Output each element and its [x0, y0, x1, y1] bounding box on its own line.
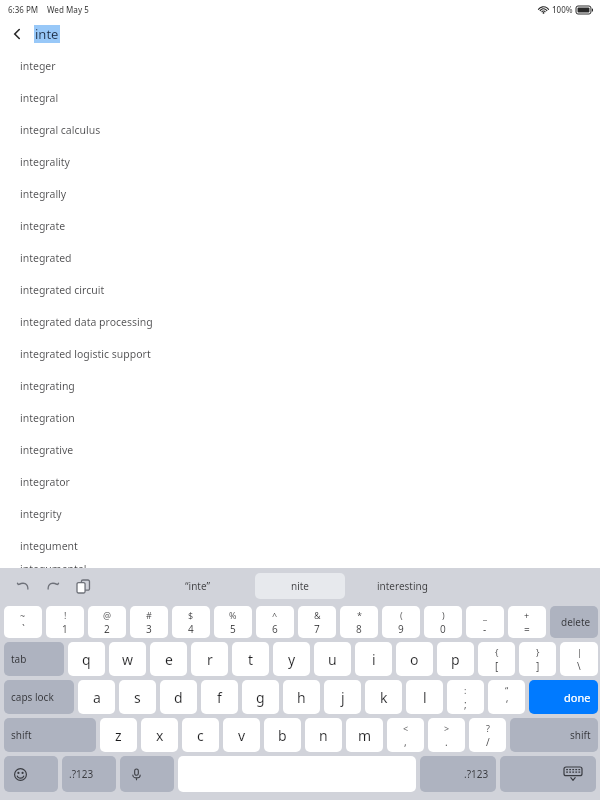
button[interactable]: e	[150, 642, 187, 676]
button[interactable]: (	[382, 606, 420, 638]
button[interactable]: integrate	[0, 210, 600, 242]
staticText: integrative	[20, 443, 74, 457]
button[interactable]: {	[478, 642, 515, 676]
staticText: b	[278, 726, 287, 745]
button[interactable]: integral calculus	[0, 114, 600, 146]
button[interactable]: ~	[4, 606, 42, 638]
button[interactable]: >	[428, 718, 465, 752]
button[interactable]: ?	[469, 718, 506, 752]
button[interactable]: #	[130, 606, 168, 638]
button[interactable]: |	[560, 642, 598, 676]
button[interactable]: v	[223, 718, 260, 752]
button[interactable]: integrated	[0, 242, 600, 274]
button[interactable]: delete	[550, 606, 598, 638]
button[interactable]: Redo	[38, 571, 68, 601]
button[interactable]: nite	[255, 573, 345, 599]
button[interactable]: ^	[256, 606, 294, 638]
button[interactable]: Undo	[8, 571, 38, 601]
button[interactable]: a	[78, 680, 115, 714]
button[interactable]: u	[314, 642, 351, 676]
staticText: 4	[188, 622, 194, 636]
button[interactable]: j	[324, 680, 361, 714]
button[interactable]: integrated data processing	[0, 306, 600, 338]
button[interactable]: Paste	[68, 571, 98, 601]
button[interactable]: t	[232, 642, 269, 676]
staticText: r	[207, 650, 213, 669]
button[interactable]: h	[283, 680, 320, 714]
button[interactable]: +	[508, 606, 546, 638]
button[interactable]: d	[160, 680, 197, 714]
other: Wi-Fi	[538, 5, 549, 14]
button[interactable]: integumental	[0, 562, 600, 568]
staticText: ^	[272, 609, 278, 621]
button[interactable]: }	[519, 642, 556, 676]
button[interactable]: .?123	[62, 756, 116, 792]
button[interactable]: integrality	[0, 146, 600, 178]
button[interactable]: k	[365, 680, 402, 714]
staticText: a	[93, 688, 101, 707]
button[interactable]: Emoji	[4, 756, 58, 792]
button[interactable]: %	[214, 606, 252, 638]
button[interactable]: shift	[4, 718, 96, 752]
button[interactable]: g	[242, 680, 279, 714]
button[interactable]: integrally	[0, 178, 600, 210]
button[interactable]: f	[201, 680, 238, 714]
button[interactable]: w	[109, 642, 146, 676]
staticText: integrated circuit	[20, 283, 105, 297]
staticText: ;	[464, 697, 467, 711]
button[interactable]: n	[305, 718, 342, 752]
button[interactable]: integument	[0, 530, 600, 562]
button[interactable]: !	[46, 606, 84, 638]
button[interactable]: )	[424, 606, 462, 638]
staticText: interesting	[377, 579, 428, 593]
button[interactable]: @	[88, 606, 126, 638]
button[interactable]: Back	[0, 18, 34, 50]
button[interactable]: done	[529, 680, 598, 714]
button[interactable]: integrated circuit	[0, 274, 600, 306]
button[interactable]: <	[387, 718, 424, 752]
button[interactable]: integrating	[0, 370, 600, 402]
button[interactable]: inte	[35, 25, 59, 43]
button[interactable]: o	[396, 642, 433, 676]
button[interactable]: c	[182, 718, 219, 752]
button[interactable]: caps lock	[4, 680, 74, 714]
button[interactable]: integrity	[0, 498, 600, 530]
button[interactable]: i	[355, 642, 392, 676]
button[interactable]: integrative	[0, 434, 600, 466]
button[interactable]: tab	[4, 642, 64, 676]
button[interactable]: z	[100, 718, 137, 752]
staticText: :	[464, 684, 467, 696]
button[interactable]: m	[346, 718, 383, 752]
staticText: .?123	[464, 767, 489, 781]
button[interactable]: :	[447, 680, 484, 714]
staticText: @	[103, 609, 112, 621]
button[interactable]: y	[273, 642, 310, 676]
button[interactable]: “	[488, 680, 525, 714]
button[interactable]: .?123	[420, 756, 496, 792]
button[interactable]: integral	[0, 82, 600, 114]
button[interactable]: b	[264, 718, 301, 752]
button[interactable]: shift	[510, 718, 598, 752]
button[interactable]: interesting	[345, 573, 460, 599]
staticText: .	[445, 735, 448, 749]
button[interactable]: integration	[0, 402, 600, 434]
button[interactable]: Dictate	[120, 756, 174, 792]
button[interactable]: &	[298, 606, 336, 638]
button[interactable]: integer	[0, 50, 600, 82]
button[interactable]: x	[141, 718, 178, 752]
staticText: d	[174, 688, 183, 707]
button[interactable]: r	[191, 642, 228, 676]
button[interactable]: *	[340, 606, 378, 638]
staticText: \	[577, 659, 581, 673]
button[interactable]: Hide keyboard	[500, 756, 596, 792]
button[interactable]: s	[119, 680, 156, 714]
button[interactable]: q	[68, 642, 105, 676]
button[interactable]: integrator	[0, 466, 600, 498]
button[interactable]: _	[466, 606, 504, 638]
button[interactable]: p	[437, 642, 474, 676]
button[interactable]: $	[172, 606, 210, 638]
button[interactable]: “inte”	[140, 573, 255, 599]
button[interactable]: l	[406, 680, 443, 714]
button[interactable]: integrated logistic support	[0, 338, 600, 370]
